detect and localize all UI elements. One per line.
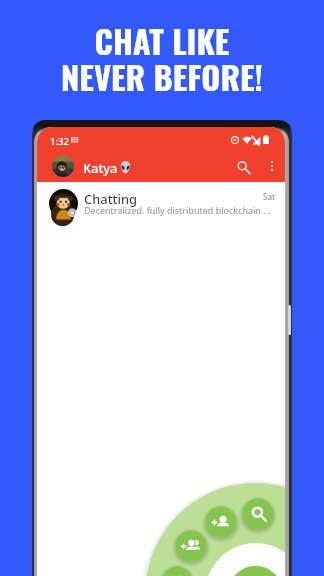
button[interactable]: Search bbox=[240, 496, 276, 532]
button[interactable]: Chatting bbox=[37, 185, 285, 220]
button[interactable]: More options bbox=[263, 157, 281, 175]
staticText: 1:32 bbox=[50, 135, 69, 148]
staticText: Katya bbox=[83, 159, 118, 176]
button[interactable]: New channel bbox=[159, 564, 195, 576]
button[interactable]: Add contact bbox=[203, 504, 239, 540]
button[interactable]: New group bbox=[173, 528, 209, 564]
staticText: CHAT LIKE NEVER BEFORE! bbox=[61, 26, 263, 98]
staticText: Chatting bbox=[84, 190, 138, 208]
staticText: Decentralized. fully distributed blockch… bbox=[84, 204, 271, 216]
button[interactable]: Open profile bbox=[52, 155, 74, 177]
button[interactable]: Search bbox=[233, 157, 253, 177]
staticText: Sat bbox=[263, 191, 276, 202]
